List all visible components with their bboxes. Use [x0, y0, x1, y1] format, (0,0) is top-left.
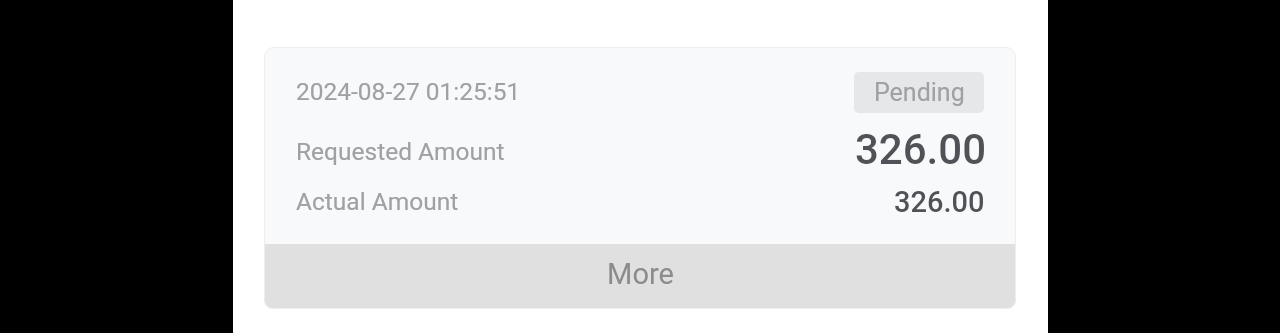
- button[interactable]: Pending: [854, 72, 984, 113]
- button[interactable]: More: [264, 244, 1016, 309]
- staticText: 326.00: [855, 125, 987, 174]
- staticText: Actual Amount: [296, 187, 459, 216]
- staticText: 2024-08-27 01:25:51: [296, 77, 521, 106]
- staticText: 326.00: [894, 185, 985, 219]
- staticText: More: [607, 257, 674, 291]
- button[interactable]: 2024-08-27 01:25:51: [264, 47, 1016, 309]
- staticText: Requested Amount: [296, 137, 505, 166]
- staticText: Pending: [874, 78, 965, 107]
